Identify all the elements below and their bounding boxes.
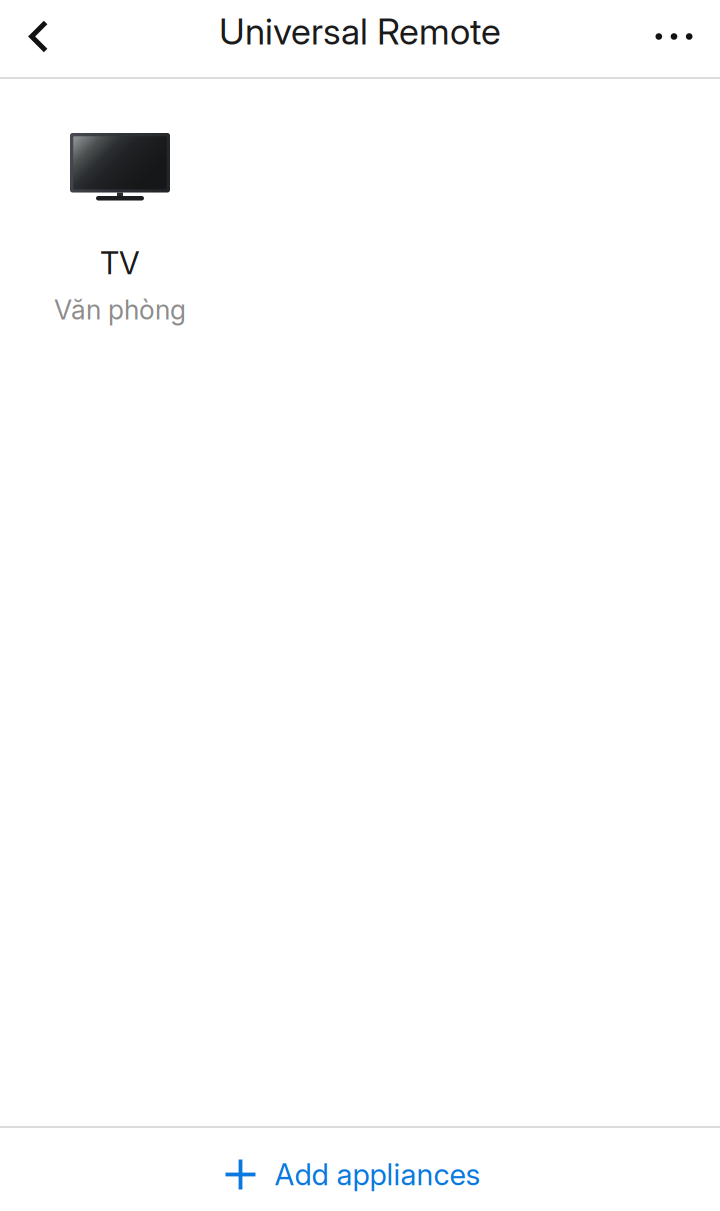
staticText: Add appliances <box>274 1157 480 1192</box>
button[interactable]: More options <box>643 6 709 70</box>
button[interactable]: TV <box>0 79 240 326</box>
staticText: Universal Remote <box>219 10 501 53</box>
button[interactable]: Add appliances <box>0 1128 720 1211</box>
staticText: Văn phòng <box>54 294 186 326</box>
button[interactable]: Back <box>12 6 69 70</box>
staticText: TV <box>100 244 140 282</box>
